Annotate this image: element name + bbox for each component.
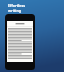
button[interactable] [5,14,35,70]
staticText: writing [8,8,21,13]
staticText: Effortless [8,3,26,8]
